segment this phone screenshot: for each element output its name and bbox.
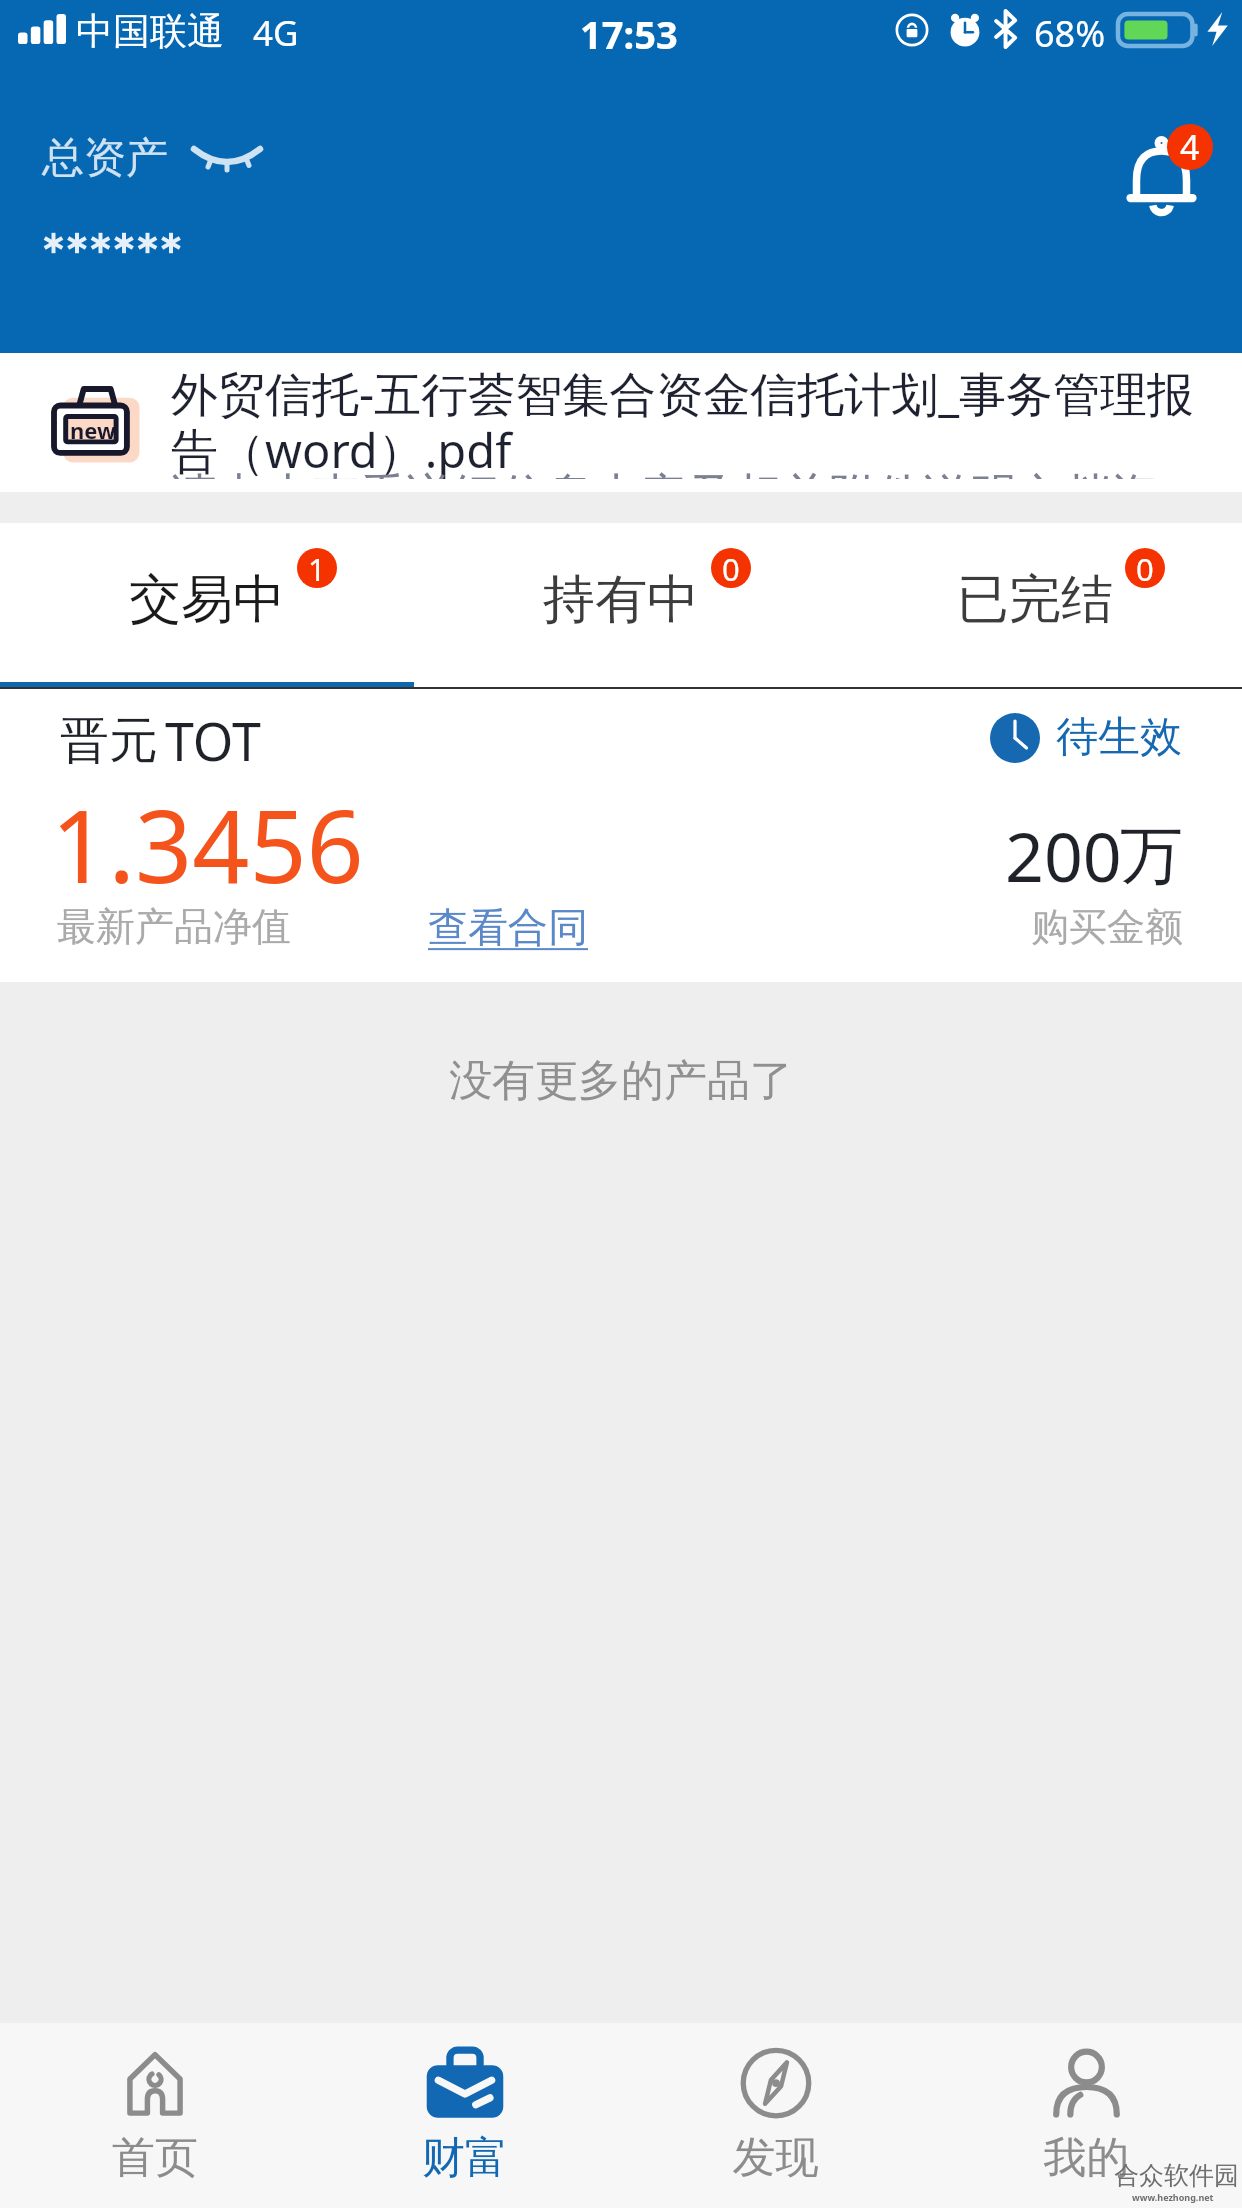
staticText: 最新产品净值 bbox=[57, 902, 291, 951]
staticText: 68% bbox=[1034, 9, 1106, 58]
button[interactable]: 查看合同 bbox=[428, 902, 588, 952]
staticText: 发现 bbox=[620, 2131, 931, 2185]
staticText: 1.3456 bbox=[51, 776, 364, 912]
button[interactable]: Hide amount bbox=[192, 146, 266, 176]
button[interactable]: 已完结 bbox=[828, 523, 1242, 687]
staticText: 中国联通 bbox=[76, 8, 224, 55]
staticText: 财富 bbox=[310, 2131, 620, 2185]
staticText: 4 bbox=[1180, 124, 1200, 170]
staticText: 请点击查看详细信息内容及相关附件说明文档资料说明 bbox=[171, 467, 1201, 492]
button[interactable]: 发现 bbox=[620, 2023, 931, 2208]
staticText: 购买金额 bbox=[0, 903, 1183, 951]
staticText: 首页 bbox=[0, 2131, 310, 2185]
staticText: 没有更多的产品了 bbox=[0, 1054, 1242, 1108]
button[interactable]: 我的 bbox=[931, 2023, 1242, 2208]
staticText: 合众软件园 bbox=[1114, 2160, 1239, 2191]
staticText: 晋元 bbox=[60, 710, 158, 772]
staticText: 已完结 bbox=[828, 567, 1242, 633]
staticText: 我的 bbox=[931, 2131, 1242, 2185]
staticText: 1 bbox=[308, 548, 326, 588]
staticText: 0 bbox=[1136, 548, 1154, 588]
button[interactable]: 持有中 bbox=[414, 523, 828, 687]
staticText: 总资产 bbox=[42, 132, 168, 185]
staticText: 4G bbox=[253, 9, 299, 57]
button[interactable]: 首页 bbox=[0, 2023, 310, 2208]
staticText: 0 bbox=[722, 548, 740, 588]
staticText: 持有中 bbox=[414, 567, 828, 633]
staticText: 外贸信托-五行荟智集合资金信托计划_事务管理报告（word）.pdf bbox=[171, 361, 1217, 482]
button[interactable]: new bbox=[0, 353, 1242, 492]
staticText: 交易中 bbox=[0, 567, 414, 633]
button[interactable]: 交易中 bbox=[0, 523, 414, 687]
button[interactable]: 晋元 bbox=[0, 689, 1242, 982]
staticText: 17:53 bbox=[580, 8, 678, 60]
staticText: TOT bbox=[165, 705, 261, 776]
staticText: 待生效 bbox=[1056, 711, 1182, 764]
staticText: new bbox=[70, 415, 116, 445]
button[interactable]: 财富 bbox=[310, 2023, 620, 2208]
button[interactable]: Notifications bbox=[1118, 120, 1218, 218]
staticText: www.hezhong.net bbox=[1132, 2191, 1214, 2203]
staticText: 200 bbox=[1005, 809, 1122, 902]
staticText: 万 bbox=[1120, 816, 1183, 895]
